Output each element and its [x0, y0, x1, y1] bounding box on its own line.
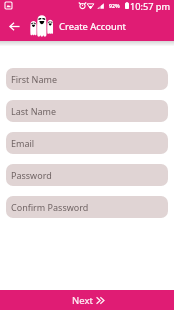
staticText: Email: [11, 137, 35, 149]
staticText: 92%: [109, 2, 120, 9]
staticText: Create Account: [59, 20, 127, 33]
button[interactable]: Next: [0, 290, 174, 310]
staticText: First Name: [11, 73, 57, 85]
button[interactable]: Confirm Password: [6, 196, 168, 218]
staticText: Next: [72, 294, 93, 307]
button[interactable]: Back: [2, 14, 26, 38]
staticText: Last Name: [11, 105, 57, 117]
button[interactable]: First Name: [6, 68, 168, 90]
button[interactable]: Email: [6, 132, 168, 154]
button[interactable]: Password: [6, 164, 168, 186]
staticText: 10:57 pm: [130, 0, 171, 12]
staticText: Password: [11, 169, 52, 181]
button[interactable]: Last Name: [6, 100, 168, 122]
staticText: Confirm Password: [11, 201, 89, 213]
